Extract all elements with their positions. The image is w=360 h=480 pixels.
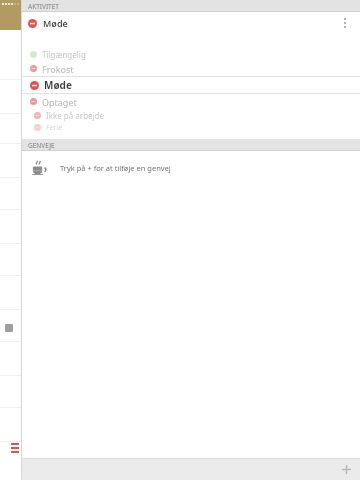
button[interactable]: Ferie [22, 122, 360, 133]
button[interactable] [0, 408, 22, 442]
staticText: GENVEJE [28, 141, 55, 150]
button[interactable] [0, 178, 22, 210]
button[interactable] [0, 144, 22, 178]
button[interactable] [0, 114, 22, 144]
button[interactable] [0, 310, 22, 342]
button[interactable]: Tilgængelig [22, 48, 360, 61]
button[interactable] [0, 244, 22, 276]
button[interactable]: Tilføj [338, 461, 354, 477]
staticText: Ikke på arbejde [46, 110, 105, 121]
staticText: Møde [43, 17, 68, 29]
button[interactable]: Møde [22, 12, 360, 34]
staticText: Møde [44, 78, 72, 92]
button[interactable]: Flere valgmuligheder [334, 12, 356, 34]
staticText: Optaget [42, 96, 77, 108]
button[interactable] [0, 376, 22, 408]
button[interactable] [0, 210, 22, 244]
staticText: AKTIVITET [28, 2, 59, 11]
button[interactable] [0, 48, 22, 80]
staticText: Tryk på + for at tilføje en genvej [60, 163, 171, 173]
button[interactable] [0, 276, 22, 310]
staticText: Tilgængelig [42, 49, 86, 60]
staticText: Frokost [42, 63, 74, 75]
button[interactable] [0, 342, 22, 376]
button[interactable]: Møde [22, 77, 360, 93]
button[interactable] [0, 80, 22, 114]
staticText: Ferie [46, 123, 63, 133]
button[interactable]: Optaget [22, 94, 360, 109]
button[interactable]: Frokost [22, 61, 360, 76]
button[interactable]: Ikke på arbejde [22, 109, 360, 122]
button[interactable]: Tryk på + for at tilføje en genvej [22, 151, 360, 185]
